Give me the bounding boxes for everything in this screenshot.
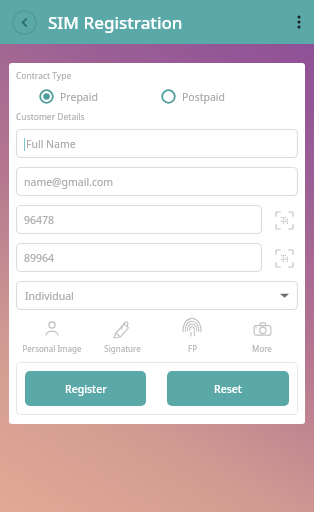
- staticText: 89964: [24, 251, 55, 265]
- staticText: FP: [188, 343, 197, 354]
- button[interactable]: Back: [9, 7, 39, 37]
- staticText: Prepaid: [60, 90, 98, 104]
- button[interactable]: Individual: [16, 281, 298, 310]
- staticText: Personal Image: [22, 343, 82, 354]
- button[interactable]: Personal Image: [17, 318, 87, 354]
- button[interactable]: Scan code: [271, 207, 297, 233]
- button[interactable]: 96478: [16, 205, 262, 234]
- button[interactable]: Fingerprint: [157, 318, 227, 354]
- staticText: Contract Type: [16, 70, 72, 82]
- button[interactable]: Postpaid: [159, 87, 228, 106]
- button[interactable]: Reset: [167, 371, 289, 406]
- staticText: Individual: [25, 289, 74, 303]
- button[interactable]: Prepaid: [37, 87, 100, 106]
- button[interactable]: Register: [25, 371, 146, 406]
- staticText: Customer Details: [16, 111, 85, 123]
- staticText: Postpaid: [182, 90, 226, 104]
- button[interactable]: 89964: [16, 243, 262, 272]
- button[interactable]: More options: [284, 0, 314, 44]
- staticText: More: [252, 343, 272, 354]
- staticText: Full Name: [26, 137, 76, 151]
- staticText: name@gmail.com: [24, 175, 114, 189]
- staticText: Register: [65, 382, 107, 396]
- button[interactable]: Full Name: [16, 129, 298, 158]
- button[interactable]: Signature: [87, 318, 157, 354]
- button[interactable]: Scan code: [271, 245, 297, 271]
- staticText: 96478: [24, 213, 55, 227]
- staticText: Reset: [214, 382, 242, 396]
- button[interactable]: name@gmail.com: [16, 167, 298, 196]
- staticText: Signature: [104, 343, 141, 354]
- staticText: SIM Registration: [48, 11, 183, 34]
- button[interactable]: More: [227, 318, 297, 354]
